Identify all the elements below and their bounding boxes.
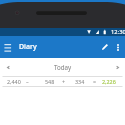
button[interactable]: Edit entry	[97, 36, 112, 58]
staticText: 2,226	[102, 78, 116, 85]
staticText: 334	[75, 78, 85, 85]
button[interactable]: Next day	[109, 58, 125, 76]
staticText: 2,440	[7, 78, 21, 85]
staticText: 548	[45, 78, 55, 85]
staticText: Diary	[19, 42, 37, 52]
staticText: 12:30	[111, 28, 125, 36]
staticText: +	[62, 78, 66, 85]
staticText: –	[26, 78, 29, 85]
button[interactable]: Navigation menu	[0, 36, 16, 58]
staticText: =	[93, 78, 97, 85]
button[interactable]: More options	[111, 36, 125, 58]
button[interactable]: Previous day	[0, 58, 16, 76]
staticText: Today	[0, 63, 125, 71]
button[interactable]: 2,440	[0, 76, 125, 87]
